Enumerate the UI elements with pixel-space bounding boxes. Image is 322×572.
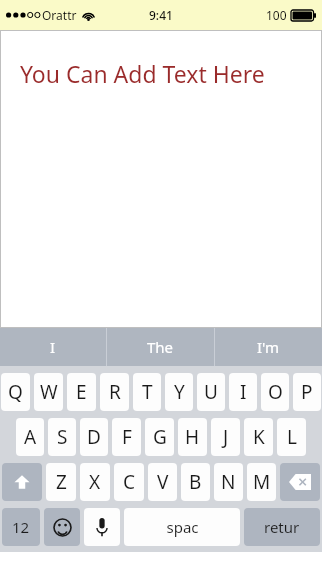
staticText: Y	[174, 379, 185, 405]
button[interactable]: retur	[244, 508, 320, 546]
staticText: 9:41	[149, 7, 173, 23]
button[interactable]: P	[293, 373, 321, 411]
staticText: The	[147, 337, 174, 357]
button[interactable]: M	[247, 463, 276, 501]
staticText: F	[122, 424, 132, 450]
staticText: I'm	[257, 337, 280, 357]
button[interactable]: U	[197, 373, 225, 411]
staticText: K	[253, 424, 265, 450]
button[interactable]: X	[80, 463, 110, 501]
staticText: G	[153, 424, 167, 450]
button[interactable]: R	[100, 373, 129, 411]
staticText: M	[253, 469, 271, 495]
button[interactable]: J	[211, 418, 240, 456]
staticText: J	[223, 424, 229, 450]
button[interactable]: S	[48, 418, 76, 456]
button[interactable]: E	[67, 373, 96, 411]
button[interactable]: The	[107, 328, 214, 366]
button[interactable]: B	[181, 463, 210, 501]
staticText: A	[24, 424, 37, 450]
button[interactable]: O	[261, 373, 289, 411]
button[interactable]: spac	[124, 508, 240, 546]
button[interactable]: N	[214, 463, 243, 501]
staticText: O	[268, 379, 283, 405]
button[interactable]: F	[112, 418, 141, 456]
button[interactable]: Y	[165, 373, 193, 411]
button[interactable]: 12	[2, 508, 40, 546]
staticText: H	[185, 424, 200, 450]
button[interactable]: A	[16, 418, 44, 456]
button[interactable]: I'm	[215, 328, 322, 366]
staticText: D	[87, 424, 101, 450]
staticText: I	[50, 337, 56, 357]
button[interactable]: Emoji	[44, 508, 80, 546]
button[interactable]: W	[34, 373, 63, 411]
button[interactable]: I	[229, 373, 257, 411]
staticText: spac	[166, 517, 199, 537]
staticText: You Can Add Text Here	[20, 58, 265, 89]
button[interactable]: Shift	[2, 463, 42, 501]
button[interactable]: L	[277, 418, 306, 456]
staticText: L	[287, 424, 297, 450]
button[interactable]: H	[178, 418, 207, 456]
staticText: V	[157, 469, 169, 495]
staticText: X	[89, 469, 101, 495]
button[interactable]: Dictation	[84, 508, 120, 546]
staticText: Q	[8, 379, 23, 405]
button[interactable]: Backspace	[280, 463, 320, 501]
staticText: 12	[12, 517, 30, 537]
button[interactable]: Z	[46, 463, 76, 501]
staticText: Z	[56, 469, 67, 495]
staticText: retur	[264, 517, 300, 537]
button[interactable]: V	[148, 463, 177, 501]
staticText: P	[301, 379, 313, 405]
staticText: R	[109, 379, 121, 405]
button[interactable]: I	[0, 328, 106, 366]
staticText: E	[76, 379, 87, 405]
button[interactable]: Q	[1, 373, 30, 411]
button[interactable]: D	[80, 418, 108, 456]
button[interactable]: K	[244, 418, 273, 456]
staticText: I	[240, 379, 247, 405]
button[interactable]: T	[133, 373, 161, 411]
button[interactable]: G	[145, 418, 174, 456]
staticText: U	[204, 379, 218, 405]
staticText: T	[142, 379, 153, 405]
staticText: B	[189, 469, 202, 495]
staticText: 100	[266, 7, 287, 23]
button[interactable]: C	[114, 463, 144, 501]
staticText: Orattr	[42, 7, 77, 23]
staticText: N	[221, 469, 236, 495]
staticText: W	[40, 379, 58, 405]
staticText: C	[123, 469, 136, 495]
staticText: S	[57, 424, 68, 450]
